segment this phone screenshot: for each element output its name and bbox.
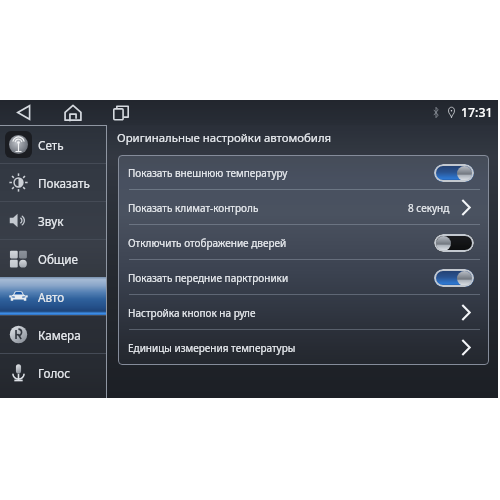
button[interactable]: Показать климат-контроль: [118, 190, 489, 225]
staticText: Сеть: [38, 137, 64, 153]
staticText: Голос: [38, 365, 70, 381]
staticText: Показать климат-контроль: [128, 201, 259, 215]
staticText: Оригинальные настройки автомобиля: [117, 130, 332, 146]
button[interactable]: Сеть: [0, 125, 107, 163]
button[interactable]: Камера: [0, 315, 107, 353]
button[interactable]: Отключить отображение дверей: [118, 225, 489, 260]
staticText: 17:31: [461, 104, 493, 121]
button[interactable]: Авто: [0, 277, 107, 315]
button[interactable]: [434, 164, 474, 182]
button[interactable]: Голос: [0, 353, 107, 391]
button[interactable]: [434, 269, 474, 287]
button[interactable]: Показать внешнюю температуру: [118, 155, 489, 190]
button[interactable]: Единицы измерения температуры: [118, 330, 489, 365]
staticText: Звук: [38, 213, 64, 229]
button[interactable]: [434, 234, 474, 252]
button[interactable]: Home: [48, 100, 97, 125]
button[interactable]: Настройка кнопок на руле: [118, 295, 489, 330]
staticText: 8 секунд: [408, 201, 450, 215]
staticText: Настройка кнопок на руле: [128, 306, 256, 320]
staticText: Общие: [38, 251, 79, 267]
staticText: Авто: [38, 289, 65, 305]
staticText: Показать: [38, 175, 90, 191]
staticText: Единицы измерения температуры: [128, 341, 296, 355]
staticText: Показать передние парктроники: [128, 271, 289, 285]
staticText: Отключить отображение дверей: [128, 236, 287, 250]
staticText: Камера: [38, 327, 81, 343]
staticText: Показать внешнюю температуру: [128, 166, 288, 180]
button[interactable]: Показать: [0, 163, 107, 201]
button[interactable]: Recent apps: [97, 100, 145, 125]
button[interactable]: Показать передние парктроники: [118, 260, 489, 295]
button[interactable]: Back: [0, 100, 48, 125]
button[interactable]: Общие: [0, 239, 107, 277]
button[interactable]: Звук: [0, 201, 107, 239]
